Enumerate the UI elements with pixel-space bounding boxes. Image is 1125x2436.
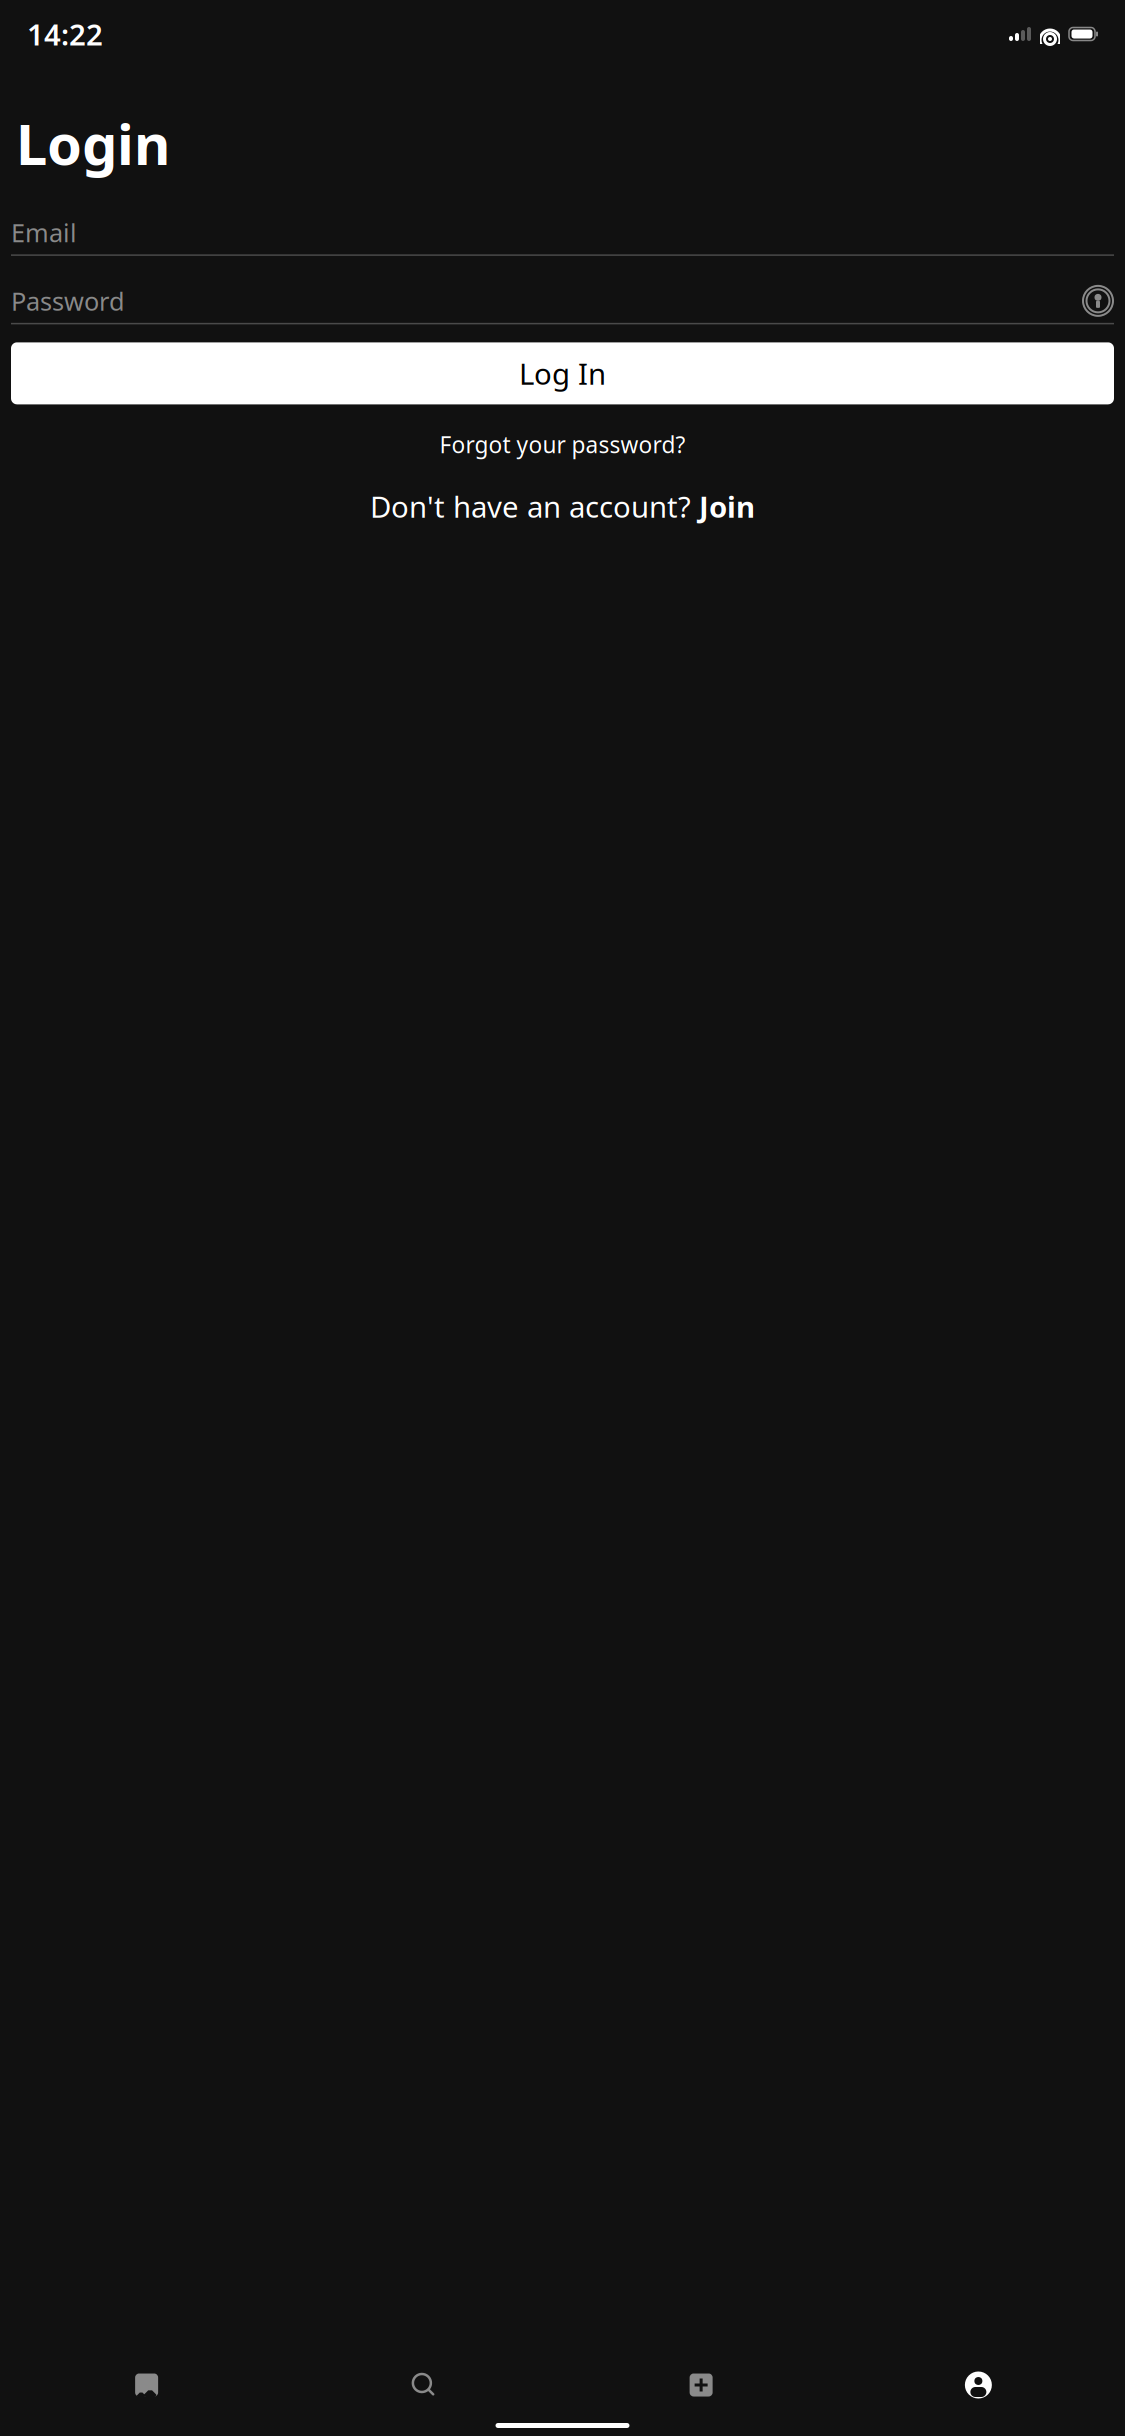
staticText: Email — [11, 215, 77, 249]
button[interactable]: Forgot your password? — [0, 426, 1125, 462]
staticText: Join — [699, 487, 755, 526]
staticText: Login — [16, 106, 170, 180]
button[interactable]: Search — [285, 2360, 562, 2410]
staticText: Forgot your password? — [439, 429, 685, 459]
button[interactable]: Don't have an account? — [0, 486, 1125, 526]
staticText: Log In — [519, 354, 606, 393]
button[interactable]: New Post — [562, 2360, 840, 2410]
button[interactable]: Photos — [8, 2360, 285, 2410]
staticText: Don't have an account? — [370, 487, 699, 526]
staticText: Password — [11, 284, 125, 318]
button[interactable]: Log In — [11, 342, 1114, 404]
button[interactable]: Profile — [840, 2360, 1117, 2410]
staticText: 14:22 — [27, 14, 103, 53]
